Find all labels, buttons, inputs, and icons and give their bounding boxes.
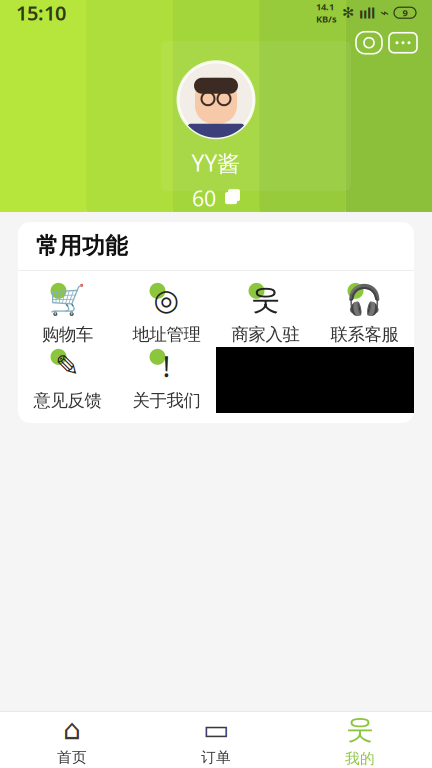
- button[interactable]: 웃: [288, 716, 432, 764]
- staticText: 我的: [345, 750, 375, 768]
- button[interactable]: !: [117, 347, 216, 413]
- staticText: 웃: [251, 282, 280, 318]
- button[interactable]: Scan: [352, 27, 386, 59]
- staticText: ✎: [55, 349, 80, 382]
- staticText: 15:10: [16, 0, 66, 26]
- staticText: 商家入驻: [231, 324, 299, 345]
- button[interactable]: ⌂: [0, 716, 144, 764]
- staticText: ◎: [153, 283, 179, 316]
- staticText: 意见反馈: [33, 390, 101, 411]
- staticText: 首页: [57, 748, 87, 766]
- button[interactable]: ◎: [117, 281, 216, 347]
- staticText: 地址管理: [132, 324, 200, 345]
- button[interactable]: ▭: [144, 716, 288, 764]
- button[interactable]: 🎧: [315, 281, 414, 347]
- staticText: ▭: [203, 714, 229, 745]
- staticText: ⌂: [63, 714, 81, 745]
- staticText: 14.1 KB/s: [316, 0, 337, 25]
- staticText: 🛒: [49, 283, 86, 317]
- staticText: 订单: [201, 748, 231, 766]
- staticText: 常用功能: [36, 232, 128, 260]
- staticText: 联系客服: [330, 324, 398, 345]
- staticText: ⌁: [375, 4, 394, 21]
- button[interactable]: Messages: [386, 27, 420, 59]
- button[interactable]: 웃: [216, 281, 315, 347]
- button[interactable]: ✎: [18, 347, 117, 413]
- staticText: 购物车: [42, 324, 93, 345]
- staticText: 60: [192, 184, 216, 212]
- staticText: 웃: [346, 712, 374, 747]
- staticText: 9: [402, 6, 407, 19]
- button[interactable]: Profile photo: [176, 60, 256, 140]
- button[interactable]: 🛒: [18, 281, 117, 347]
- staticText: 🎧: [346, 283, 383, 317]
- staticText: YY酱: [191, 148, 240, 178]
- staticText: 关于我们: [132, 390, 200, 411]
- staticText: ✻: [337, 4, 359, 21]
- staticText: ııll: [359, 3, 375, 22]
- staticText: !: [162, 346, 170, 385]
